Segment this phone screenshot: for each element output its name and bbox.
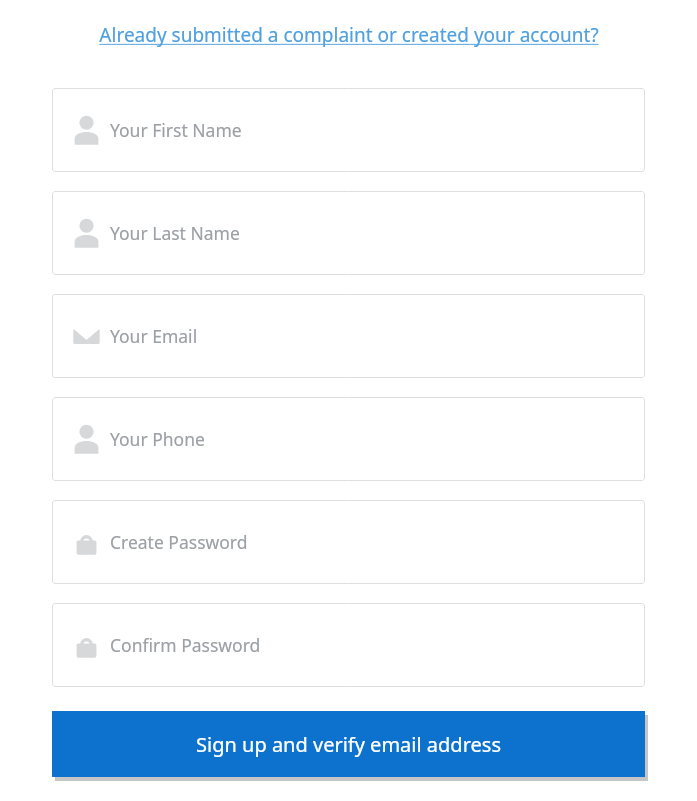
button[interactable]: Already submitted a complaint or created… [40,22,657,48]
staticText: Confirm Password [110,633,261,657]
button[interactable]: Your Phone [52,397,645,481]
staticText: Your First Name [110,118,242,142]
staticText: Your Email [110,324,198,348]
button[interactable]: Confirm Password [52,603,645,687]
button[interactable]: Sign up and verify email address [52,711,645,777]
staticText: Your Phone [110,427,205,451]
staticText: Your Last Name [110,221,240,245]
button[interactable]: Your First Name [52,88,645,172]
button[interactable]: Your Email [52,294,645,378]
staticText: Sign up and verify email address [196,731,501,758]
staticText: Already submitted a complaint or created… [99,22,599,48]
button[interactable]: Create Password [52,500,645,584]
button[interactable]: Your Last Name [52,191,645,275]
staticText: Create Password [110,530,248,554]
